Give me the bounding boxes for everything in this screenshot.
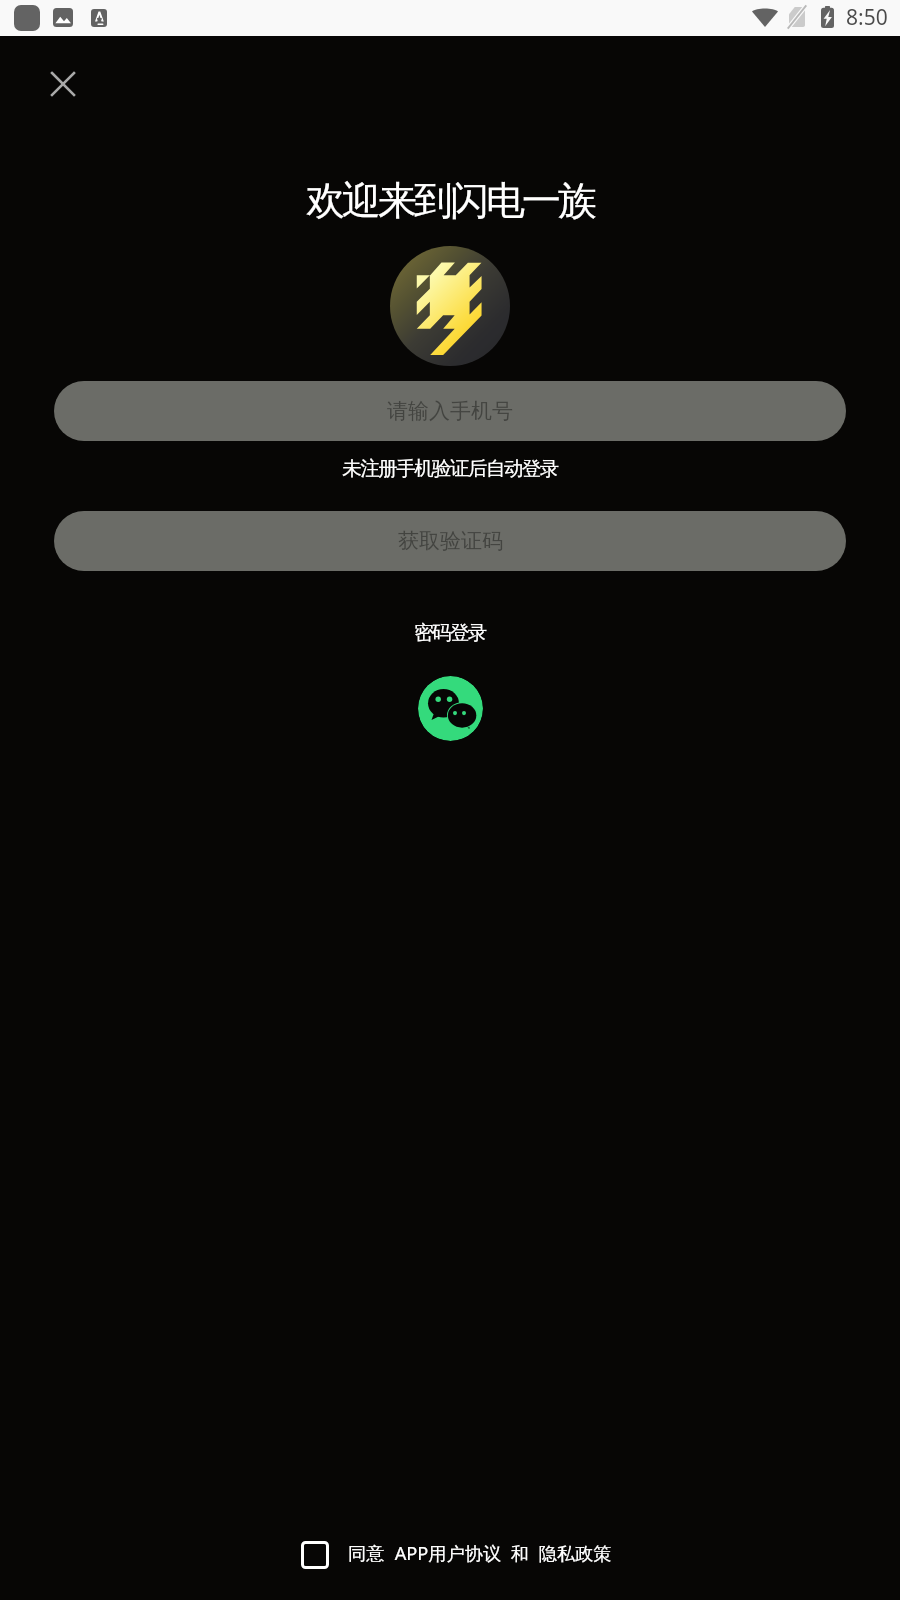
button[interactable]: APP用户协议: [390, 1541, 506, 1566]
staticText: APP用户协议: [390, 1541, 506, 1566]
staticText: 同意: [348, 1541, 390, 1566]
staticText: 获取验证码: [398, 528, 503, 554]
staticText: 密码登录: [414, 620, 486, 645]
button[interactable]: 请输入手机号: [54, 381, 846, 441]
button[interactable]: Agree to terms checkbox: [301, 1541, 329, 1569]
button[interactable]: Close: [39, 60, 87, 108]
button[interactable]: 获取验证码: [54, 511, 846, 571]
button[interactable]: Sign in with WeChat: [418, 676, 483, 741]
staticText: 欢迎来到闪电一族: [0, 176, 900, 225]
staticText: 未注册手机验证后自动登录: [0, 456, 900, 481]
staticText: 隐私政策: [534, 1541, 612, 1566]
staticText: 8:50: [846, 3, 888, 32]
staticText: 请输入手机号: [387, 398, 513, 424]
button[interactable]: 隐私政策: [534, 1541, 612, 1566]
staticText: 和: [506, 1541, 534, 1566]
button[interactable]: 密码登录: [390, 611, 510, 654]
